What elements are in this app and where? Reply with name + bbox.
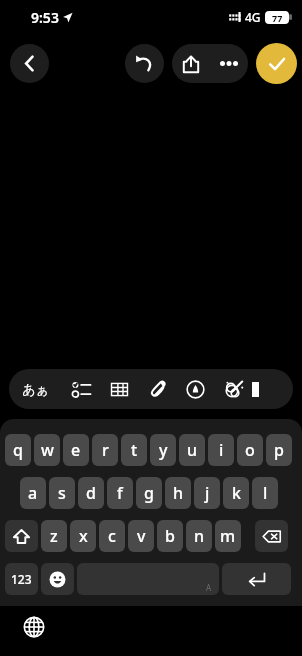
staticText: q [13, 439, 23, 461]
button[interactable]: w [34, 434, 60, 466]
button[interactable]: o [237, 434, 263, 466]
staticText: あぁ [22, 381, 49, 397]
staticText: e [71, 439, 81, 461]
staticText: f [117, 482, 123, 504]
button[interactable]: a [20, 477, 46, 509]
button[interactable]: Table [100, 369, 138, 409]
staticText: m [220, 525, 236, 547]
staticText: v [137, 525, 146, 547]
staticText: h [173, 482, 184, 504]
button[interactable]: v [128, 520, 154, 552]
button[interactable]: r [92, 434, 118, 466]
button[interactable]: p [266, 434, 292, 466]
staticText: p [274, 439, 284, 461]
button[interactable]: Change keyboard language [19, 612, 49, 642]
button[interactable]: Undo [125, 44, 164, 83]
staticText: i [219, 439, 224, 461]
button[interactable]: g [136, 477, 162, 509]
button[interactable]: Attach [138, 369, 176, 409]
button[interactable]: Enter [222, 563, 291, 595]
staticText: r [102, 439, 109, 461]
staticText: 123 [11, 571, 32, 587]
staticText: n [194, 525, 205, 547]
staticText: x [79, 525, 88, 547]
staticText: l [263, 482, 268, 504]
button[interactable]: 123 [5, 563, 38, 595]
button[interactable]: n [186, 520, 212, 552]
staticText: d [86, 482, 96, 504]
button[interactable]: j [194, 477, 220, 509]
staticText: o [245, 439, 255, 461]
button[interactable]: Shift [5, 520, 38, 552]
staticText: y [159, 439, 168, 461]
button[interactable]: l [252, 477, 278, 509]
staticText: z [50, 525, 58, 547]
button[interactable]: e [63, 434, 89, 466]
button[interactable]: AI assist [214, 369, 252, 409]
staticText: j [205, 482, 210, 504]
staticText: w [41, 439, 54, 461]
button[interactable]: x [70, 520, 96, 552]
staticText: s [58, 482, 66, 504]
staticText: u [187, 439, 198, 461]
button[interactable]: u [179, 434, 205, 466]
button[interactable]: c [99, 520, 125, 552]
button[interactable]: z [41, 520, 67, 552]
button[interactable]: q [5, 434, 31, 466]
staticText: t [131, 439, 138, 461]
staticText: b [165, 525, 175, 547]
button[interactable]: Emoji [41, 563, 74, 595]
button[interactable]: t [121, 434, 147, 466]
button[interactable]: s [49, 477, 75, 509]
button[interactable]: Share [172, 44, 210, 83]
button[interactable]: h [165, 477, 191, 509]
button[interactable]: k [223, 477, 249, 509]
staticText: 77 [272, 12, 283, 24]
staticText: 4G [245, 9, 261, 25]
button[interactable]: y [150, 434, 176, 466]
button[interactable]: Bold [252, 369, 266, 409]
button[interactable]: b [157, 520, 183, 552]
button[interactable]: Checklist [62, 369, 100, 409]
button[interactable]: Draw [176, 369, 214, 409]
button[interactable]: Back [10, 44, 49, 83]
staticText: 9:53 [31, 8, 59, 27]
staticText: a [28, 482, 38, 504]
staticText: k [232, 482, 241, 504]
button[interactable]: More options [210, 44, 248, 83]
button[interactable]: m [215, 520, 241, 552]
button[interactable]: i [208, 434, 234, 466]
button[interactable]: Backspace [255, 520, 288, 552]
button[interactable]: f [107, 477, 133, 509]
button[interactable]: Done [256, 43, 297, 84]
button[interactable]: d [78, 477, 104, 509]
staticText: A [206, 582, 212, 593]
button[interactable]: Text format [9, 369, 62, 409]
staticText: c [108, 525, 116, 547]
staticText: g [144, 482, 154, 504]
